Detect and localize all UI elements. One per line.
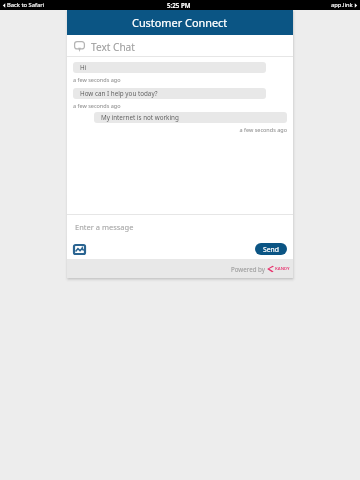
staticText: KANDY <box>275 266 290 272</box>
staticText: 5:25 PM <box>167 1 191 9</box>
staticText: a few seconds ago <box>73 76 121 83</box>
staticText: Customer Connect <box>132 15 228 30</box>
button[interactable]: Text Chat <box>67 35 293 56</box>
staticText: How can I help you today? <box>80 89 158 98</box>
button[interactable]: Enter a message <box>67 215 293 238</box>
staticText: Text Chat <box>91 40 135 54</box>
staticText: My internet is not working <box>101 113 179 122</box>
button[interactable]: Send <box>255 243 287 255</box>
button[interactable]: Attach image <box>74 244 85 254</box>
staticText: Back to Safari <box>7 1 45 9</box>
staticText: Powered by <box>231 265 265 273</box>
staticText: a few seconds ago <box>73 102 121 109</box>
staticText: app.link <box>331 1 353 9</box>
staticText: a few seconds ago <box>73 126 287 133</box>
staticText: Enter a message <box>75 222 134 232</box>
staticText: Hi <box>80 63 87 72</box>
staticText: Send <box>263 245 279 254</box>
